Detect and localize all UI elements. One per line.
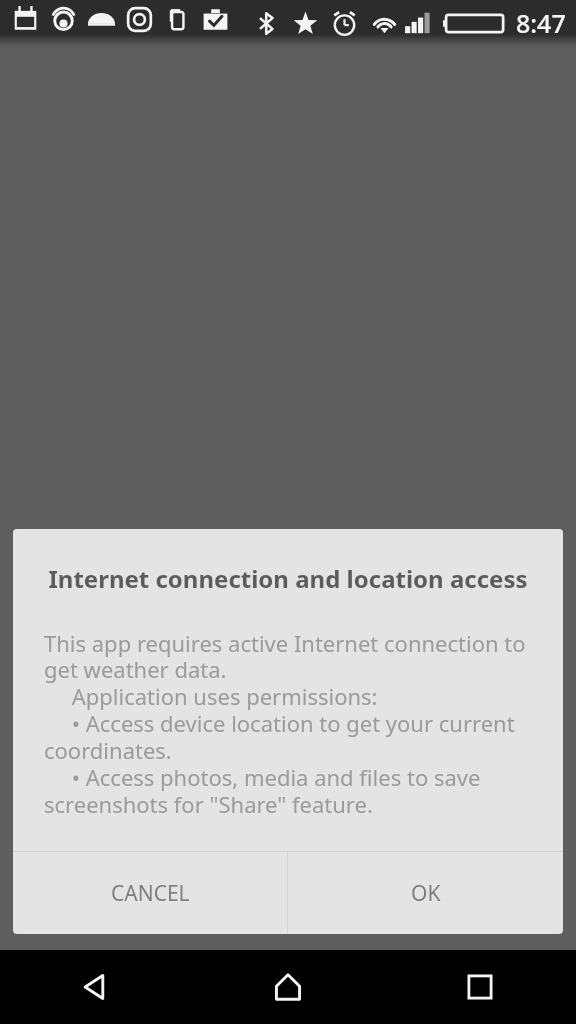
staticText: Internet connection and location access xyxy=(37,562,539,595)
button[interactable]: Home xyxy=(192,950,384,1024)
staticText: This app requires active Internet connec… xyxy=(44,628,543,819)
button[interactable]: OK xyxy=(288,852,563,934)
staticText: CANCEL xyxy=(111,879,190,908)
staticText: 8:47 xyxy=(516,6,566,40)
staticText: OK xyxy=(411,879,441,908)
button[interactable]: CANCEL xyxy=(13,852,287,934)
button[interactable]: Recent apps xyxy=(384,950,576,1024)
button[interactable]: Back xyxy=(0,950,192,1024)
